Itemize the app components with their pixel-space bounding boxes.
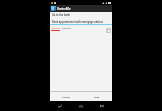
button[interactable]: 8/23/14 bbox=[52, 27, 61, 30]
staticText: Go to the bank bbox=[52, 13, 71, 16]
button[interactable]: Home bbox=[70, 101, 91, 111]
button[interactable]: Go to the bank bbox=[50, 12, 112, 17]
staticText: Cancel bbox=[62, 95, 70, 98]
button[interactable]: Book appointment with mortgage advisor bbox=[50, 17, 112, 25]
button[interactable]: Pick date and time bbox=[106, 28, 111, 33]
button[interactable]: Recent apps bbox=[91, 101, 112, 111]
staticText: Save bbox=[94, 95, 100, 98]
staticText: RemindMe bbox=[57, 7, 71, 11]
staticText: Book appointment with mortgage advisor bbox=[52, 20, 104, 23]
button[interactable]: 4:29 PM bbox=[62, 27, 71, 30]
button[interactable]: Back bbox=[50, 101, 70, 111]
button[interactable]: Save bbox=[81, 92, 112, 101]
button[interactable]: Cancel bbox=[50, 92, 81, 101]
